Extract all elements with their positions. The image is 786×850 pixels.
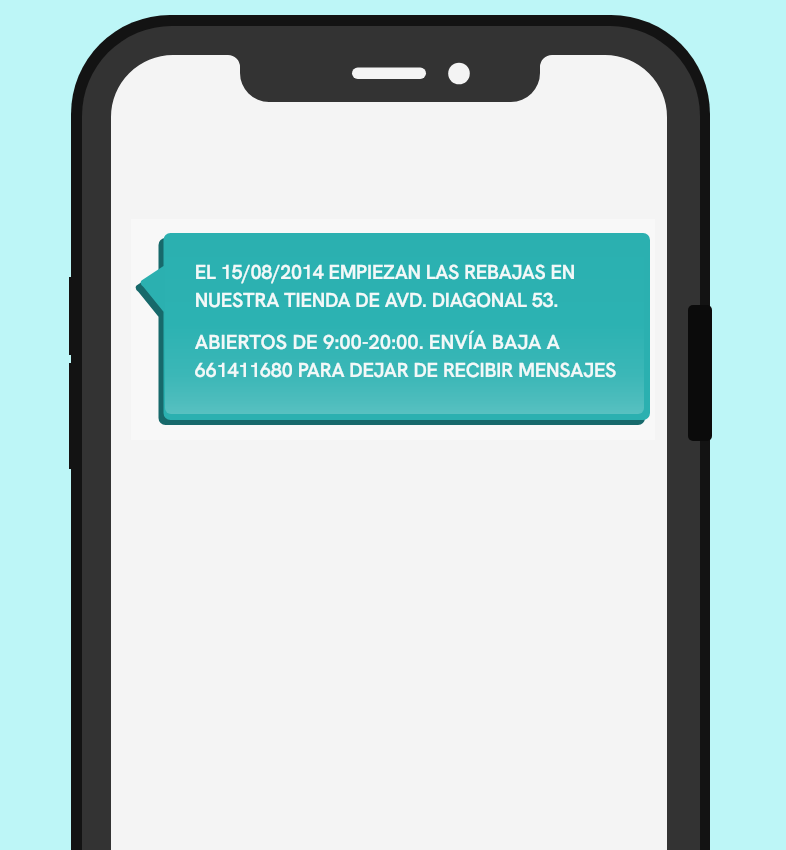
button[interactable]: Smartphone showing a promotional SMS mes… (0, 0, 786, 850)
